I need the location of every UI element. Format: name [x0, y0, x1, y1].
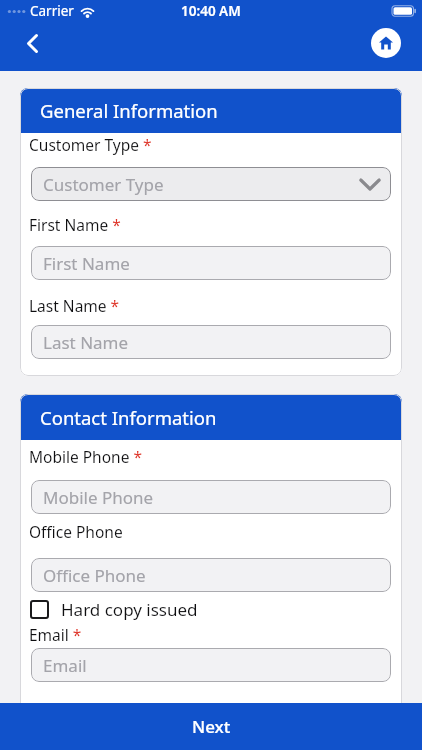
staticText: First Name *: [29, 214, 121, 235]
button[interactable]: Last Name: [31, 325, 391, 359]
staticText: Email: [43, 654, 87, 677]
staticText: Mobile Phone *: [29, 446, 142, 467]
button[interactable]: Office Phone: [31, 558, 391, 592]
staticText: General Information: [40, 98, 218, 123]
staticText: Last Name: [43, 331, 129, 354]
button[interactable]: Mobile Phone: [31, 480, 391, 514]
button[interactable]: [16, 27, 48, 59]
button[interactable]: Hard copy issued: [29, 598, 393, 621]
staticText: Email *: [29, 624, 82, 645]
staticText: 10:40 AM: [181, 2, 241, 20]
staticText: Office Phone: [43, 564, 146, 587]
button[interactable]: [371, 28, 401, 58]
button[interactable]: Customer Type: [31, 167, 391, 201]
staticText: Customer Type *: [29, 134, 152, 155]
staticText: Last Name *: [29, 295, 120, 316]
staticText: Contact Information: [40, 405, 217, 430]
button[interactable]: Next: [0, 703, 422, 750]
staticText: Mobile Phone: [43, 486, 154, 509]
staticText: Office Phone: [29, 521, 123, 542]
staticText: Next: [192, 715, 231, 738]
staticText: Customer Type: [43, 173, 164, 196]
button[interactable]: First Name: [31, 246, 391, 280]
button[interactable]: Email: [31, 648, 391, 682]
staticText: Hard copy issued: [61, 598, 198, 621]
staticText: First Name: [43, 252, 130, 275]
staticText: Carrier: [30, 2, 74, 20]
